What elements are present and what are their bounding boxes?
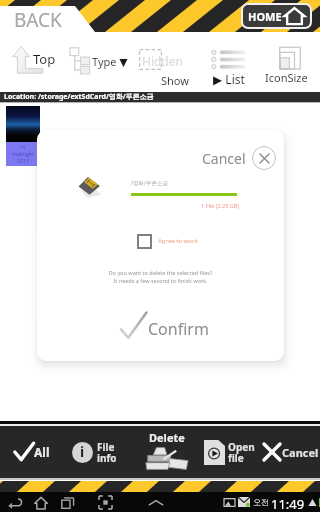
staticText: 오전 (253, 497, 269, 507)
button[interactable]: Confirm (121, 309, 209, 343)
button[interactable]: H midnight 2011 (6, 106, 40, 166)
button[interactable]: Agree to work (137, 232, 198, 250)
staticText: All (34, 444, 50, 460)
staticText: H midnight 2011 (6, 144, 40, 165)
staticText: 11:49 (271, 495, 305, 509)
button[interactable]: ▶ List (205, 46, 255, 86)
staticText: Agree to work (158, 237, 198, 245)
button[interactable]: Cancel (202, 145, 276, 171)
staticText: Type ▼ (92, 54, 128, 69)
staticText: ▶ List (213, 71, 245, 87)
button[interactable]: Back (8, 496, 22, 510)
staticText: Show (161, 73, 189, 88)
staticText: /영화/푸른소금 (131, 179, 169, 187)
staticText: i (80, 442, 85, 461)
staticText: 1 File (2.25 GB) (201, 202, 240, 209)
button[interactable]: Delete (136, 430, 198, 471)
staticText: HOME (248, 9, 282, 24)
staticText: Confirm (148, 318, 209, 340)
button[interactable]: Home (243, 5, 310, 27)
button[interactable]: IconSize (262, 45, 318, 85)
button[interactable]: Screenshot (99, 496, 112, 509)
staticText: File info (97, 440, 117, 465)
button[interactable]: Hidden (138, 46, 188, 86)
staticText: Do you want to delete the selected files… (37, 269, 284, 285)
staticText: BACK (14, 7, 62, 32)
button[interactable]: Top (2, 42, 64, 78)
staticText: Top (33, 50, 56, 68)
staticText: IconSize (265, 70, 308, 85)
staticText: Location: /storage/extSdCard/영화/푸른소금 (4, 92, 154, 102)
button[interactable]: Cancel (262, 438, 319, 466)
button[interactable]: BACK (0, 6, 95, 32)
button[interactable]: i (72, 437, 117, 467)
staticText: Hidden (142, 53, 183, 69)
button[interactable]: All (14, 438, 50, 466)
button[interactable]: Recents (61, 496, 75, 510)
button[interactable]: Type ▼ (68, 44, 126, 76)
button[interactable]: Open file (204, 437, 255, 467)
button[interactable]: Expand (148, 498, 164, 508)
staticText: Open file (228, 440, 255, 465)
staticText: Delete (149, 430, 185, 445)
button[interactable]: Home (34, 496, 48, 510)
staticText: Cancel (202, 149, 246, 168)
staticText: Cancel (282, 445, 319, 460)
